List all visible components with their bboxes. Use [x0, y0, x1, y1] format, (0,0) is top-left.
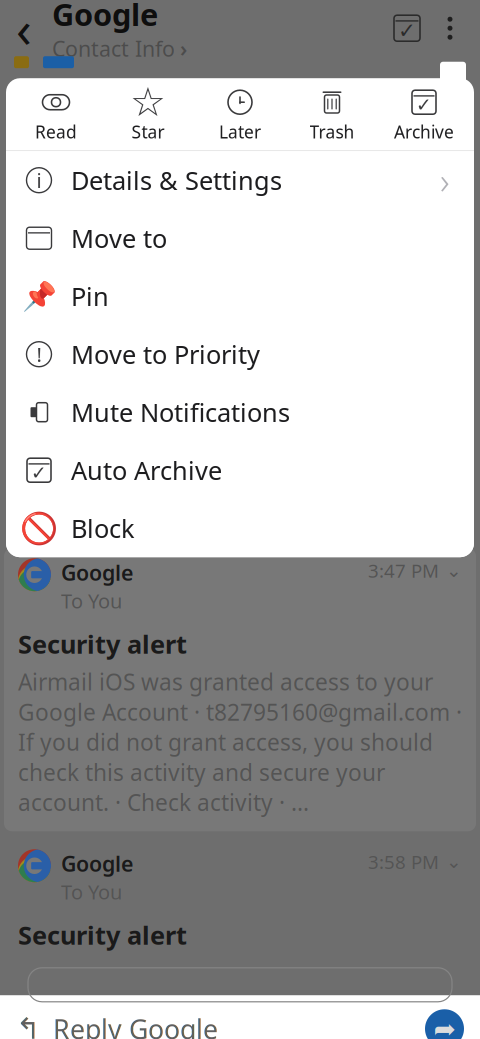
button[interactable]: 🚫 [6, 499, 474, 557]
button[interactable]: Back [0, 4, 48, 52]
staticText: 3:58 PM [368, 849, 439, 874]
button[interactable]: Trash [286, 76, 378, 152]
button[interactable]: Archive [386, 7, 428, 49]
staticText: ➦ [433, 1014, 455, 1039]
staticText: Move to Priority [71, 337, 260, 371]
staticText: ✓ [31, 462, 47, 483]
staticText: Star [131, 120, 164, 143]
button[interactable]: Read [10, 76, 102, 152]
button[interactable]: ↰ [0, 1002, 480, 1039]
staticText: Trash [309, 120, 354, 143]
staticText: Move to [71, 221, 167, 255]
staticText: i [36, 167, 41, 193]
button[interactable]: Later [194, 76, 286, 152]
staticText: Google [61, 558, 133, 586]
button[interactable]: Move to [6, 209, 474, 267]
staticText: Google [52, 0, 158, 34]
staticText: ! [36, 341, 41, 367]
staticText: Security alert [18, 627, 187, 661]
staticText: ✓ [416, 94, 432, 115]
staticText: Mute Notifications [71, 395, 290, 429]
staticText: Later [219, 120, 261, 143]
staticText: Read [35, 120, 77, 143]
staticText: Reply Google [53, 1011, 218, 1039]
staticText: ⌄ [446, 851, 462, 872]
staticText: › [440, 156, 450, 204]
button[interactable]: Contact Info [52, 34, 187, 63]
button[interactable]: i [6, 151, 474, 209]
button[interactable]: ✓ [6, 441, 474, 499]
staticText: Security alert [18, 918, 187, 952]
staticText: 🚫 [20, 511, 58, 546]
staticText: ↰ [16, 1012, 41, 1039]
button[interactable]: Mute Notifications [6, 383, 474, 441]
button[interactable]: ☆ [102, 76, 194, 152]
staticText: ✓ [398, 19, 416, 43]
staticText: › [180, 34, 187, 63]
button[interactable]: 📌 [6, 267, 474, 325]
staticText: Block [71, 511, 135, 545]
staticText: Airmail iOS was granted access to your G… [18, 667, 462, 817]
button[interactable]: More options [428, 6, 472, 50]
staticText: 📌 [21, 280, 56, 312]
staticText: Auto Archive [71, 453, 222, 487]
staticText: Google [61, 849, 133, 878]
button[interactable]: ✓ [378, 76, 470, 152]
staticText: 3:47 PM [368, 558, 439, 583]
staticText: Pin [71, 279, 109, 313]
staticText: ‹ [16, 0, 32, 62]
button[interactable]: ! [6, 325, 474, 383]
staticText: To You [61, 587, 122, 614]
staticText: Details & Settings [71, 163, 282, 197]
staticText: Contact Info [52, 34, 175, 63]
staticText: ⌄ [446, 560, 462, 581]
staticText: To You [61, 879, 122, 905]
staticText: ☆ [130, 79, 166, 125]
staticText: Archive [394, 120, 454, 143]
